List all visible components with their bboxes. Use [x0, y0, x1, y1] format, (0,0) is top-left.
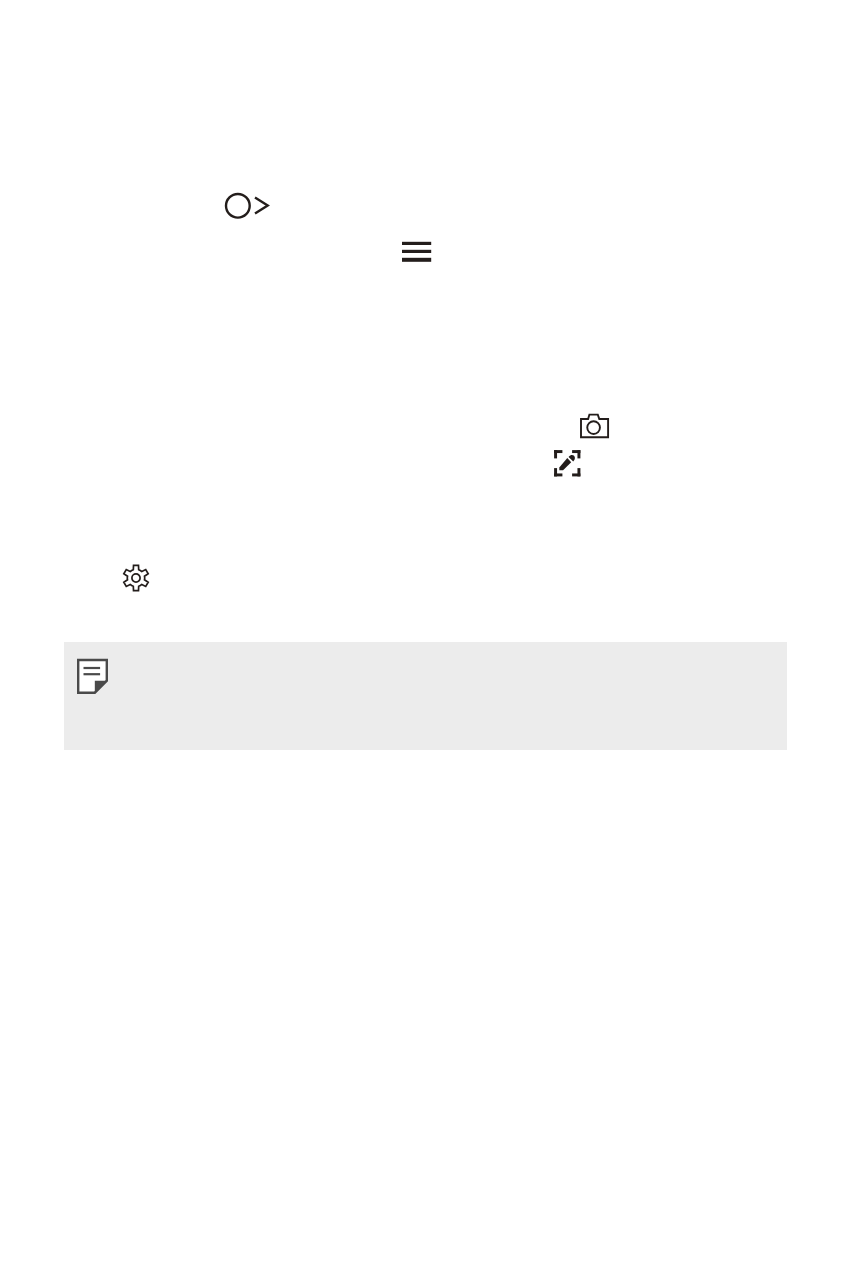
- button[interactable]: Edit: [550, 446, 584, 480]
- other: Note: [78, 660, 109, 695]
- button[interactable]: Note: [64, 642, 787, 750]
- button[interactable]: Settings: [119, 561, 153, 595]
- button[interactable]: Camera: [576, 409, 612, 443]
- button[interactable]: Next: [220, 188, 272, 222]
- button[interactable]: Menu: [398, 236, 435, 266]
